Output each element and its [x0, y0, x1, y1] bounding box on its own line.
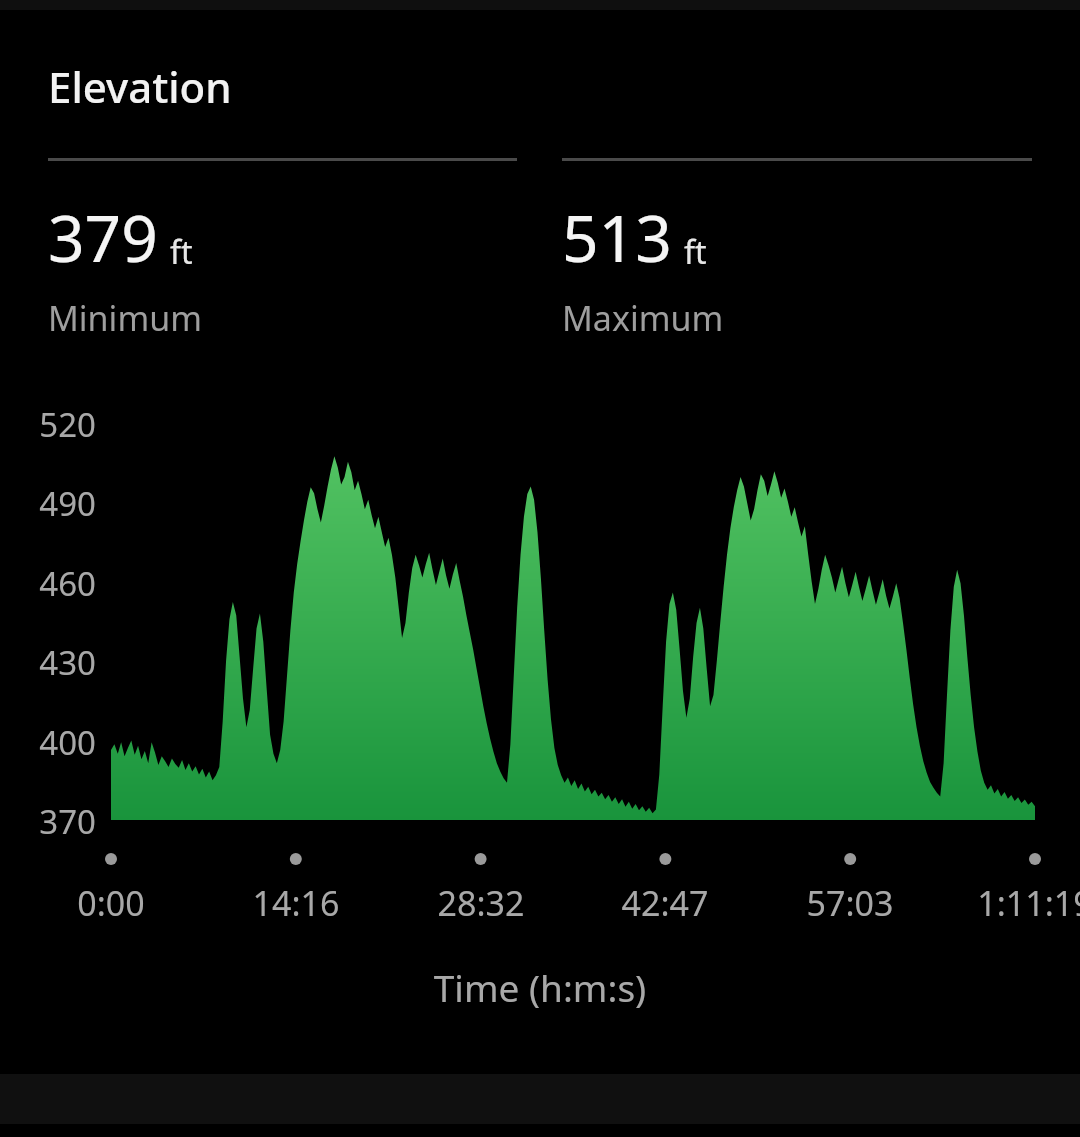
button[interactable]: Elevation over time chart	[0, 390, 1080, 892]
staticText: 14:16	[166, 880, 426, 926]
button[interactable]: 513	[562, 158, 1032, 341]
staticText: Time (h:m:s)	[0, 962, 1080, 1012]
staticText: 400	[0, 720, 96, 765]
staticText: Elevation	[48, 58, 232, 115]
staticText: 370	[0, 799, 96, 844]
staticText: 0:00	[0, 880, 241, 926]
staticText: 1:11:19	[905, 880, 1080, 926]
staticText: 42:47	[535, 880, 795, 926]
staticText: Maximum	[562, 295, 724, 341]
staticText: ft	[684, 230, 707, 274]
staticText: 520	[0, 402, 96, 447]
staticText: Minimum	[48, 295, 202, 341]
button[interactable]: Elevation	[0, 0, 1080, 115]
staticText: 430	[0, 640, 96, 685]
staticText: 57:03	[720, 880, 980, 926]
staticText: 379	[48, 194, 158, 281]
staticText: ft	[170, 230, 193, 274]
staticText: 490	[0, 481, 96, 526]
button[interactable]: 379	[48, 158, 517, 341]
staticText: 460	[0, 561, 96, 606]
staticText: 513	[562, 194, 672, 281]
staticText: 28:32	[351, 880, 611, 926]
